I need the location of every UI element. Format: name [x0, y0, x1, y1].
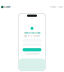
button[interactable]: [22, 48, 41, 51]
staticText: Acme: [4, 5, 10, 9]
staticText: Sign in to continue: [24, 35, 40, 37]
button[interactable]: Forgot password?: [24, 53, 39, 55]
button[interactable]: Acme: [1, 5, 10, 9]
staticText: Forgot password?: [24, 53, 39, 55]
staticText: Product Docs: [50, 6, 63, 8]
button[interactable]: Product Docs: [50, 6, 63, 8]
staticText: Welcome back: [24, 31, 40, 34]
